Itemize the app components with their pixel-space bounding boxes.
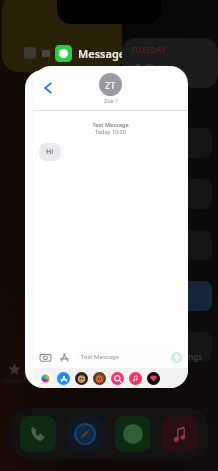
staticText: TUESDAY xyxy=(131,44,167,55)
button[interactable]: ZT xyxy=(99,73,122,104)
button[interactable]: Music xyxy=(129,372,142,385)
staticText: Today 10:00 xyxy=(33,128,188,135)
staticText: 19 xyxy=(131,55,157,85)
button[interactable]: Camera xyxy=(38,350,52,364)
button[interactable]: Back xyxy=(37,77,59,99)
button[interactable]: Photos xyxy=(39,372,52,385)
button[interactable]: App Store xyxy=(57,372,70,385)
other: Send xyxy=(171,352,182,363)
button[interactable]: Phone xyxy=(20,416,56,452)
button[interactable]: Fitness xyxy=(147,372,160,385)
staticText: Hi xyxy=(46,147,54,157)
button[interactable]: Safari xyxy=(67,416,103,452)
staticText: Zoe xyxy=(104,97,114,104)
button[interactable]: Apps xyxy=(57,350,71,364)
staticText: ZT xyxy=(105,79,116,91)
staticText: Messages xyxy=(78,46,131,61)
staticText: ings xyxy=(186,351,203,362)
button[interactable]: Music xyxy=(162,416,198,452)
staticText: Text Message xyxy=(81,353,120,361)
button[interactable]: Images xyxy=(111,372,124,385)
staticText: Favour xyxy=(4,377,24,385)
button[interactable]: Animoji xyxy=(93,372,106,385)
staticText: Text Message xyxy=(33,121,188,128)
button[interactable]: Messages xyxy=(115,416,151,452)
button[interactable]: Memoji xyxy=(75,372,88,385)
button[interactable]: Text Message xyxy=(76,350,183,364)
